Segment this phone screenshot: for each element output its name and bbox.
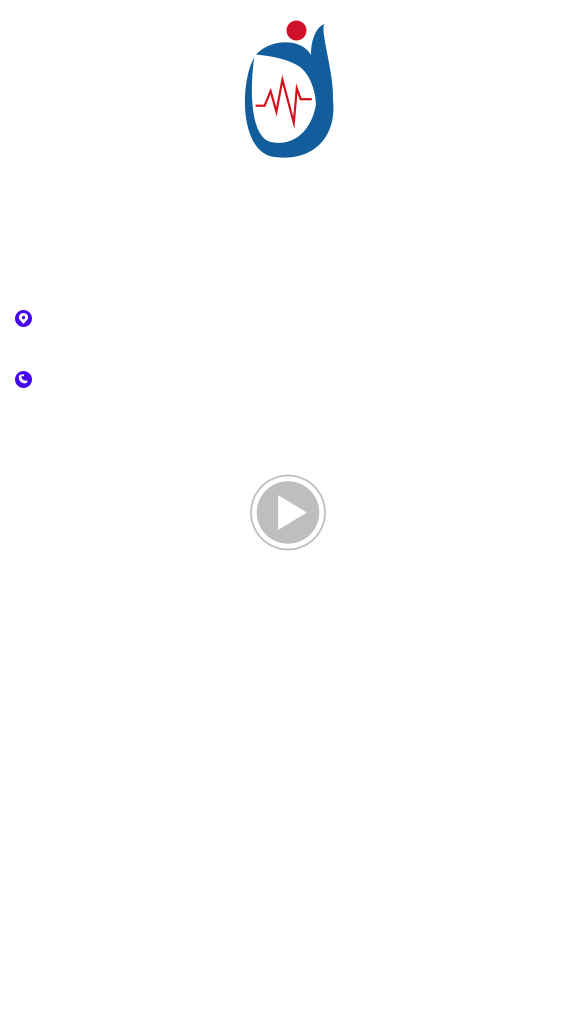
- button[interactable]: Location: [15, 310, 32, 327]
- button[interactable]: Play video: [251, 475, 325, 549]
- button[interactable]: Call: [15, 371, 32, 388]
- button[interactable]: Home: [238, 18, 336, 158]
